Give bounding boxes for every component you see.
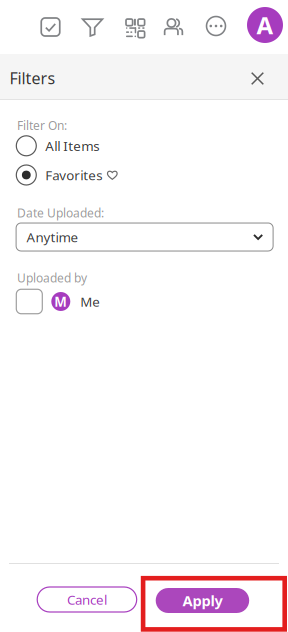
button[interactable]: Scan code xyxy=(113,6,143,36)
staticText: Favorites xyxy=(45,166,102,184)
staticText: All Items xyxy=(45,137,99,155)
button[interactable]: Filter xyxy=(77,12,107,42)
button[interactable]: M xyxy=(16,289,131,314)
button[interactable]: Cancel xyxy=(37,587,137,612)
button[interactable]: Select xyxy=(35,12,65,42)
button[interactable]: Close xyxy=(244,65,270,91)
staticText: A xyxy=(256,9,273,41)
staticText: Apply xyxy=(182,591,222,610)
staticText: Anytime xyxy=(27,228,79,246)
staticText: Filters xyxy=(10,67,56,88)
button[interactable]: Anytime xyxy=(16,223,273,251)
button[interactable]: Shared with xyxy=(158,12,188,42)
staticText: Uploaded by xyxy=(17,270,87,286)
staticText: Cancel xyxy=(67,591,107,608)
staticText: Filter On: xyxy=(17,117,67,133)
button[interactable]: Account xyxy=(247,7,283,43)
button[interactable]: All Items xyxy=(16,135,181,156)
staticText: M xyxy=(54,293,67,310)
staticText: Me xyxy=(80,293,100,310)
staticText: Date Uploaded: xyxy=(17,205,104,221)
button[interactable]: More xyxy=(201,11,231,41)
button[interactable]: Favorites xyxy=(16,164,181,185)
button[interactable]: Apply xyxy=(156,588,249,613)
